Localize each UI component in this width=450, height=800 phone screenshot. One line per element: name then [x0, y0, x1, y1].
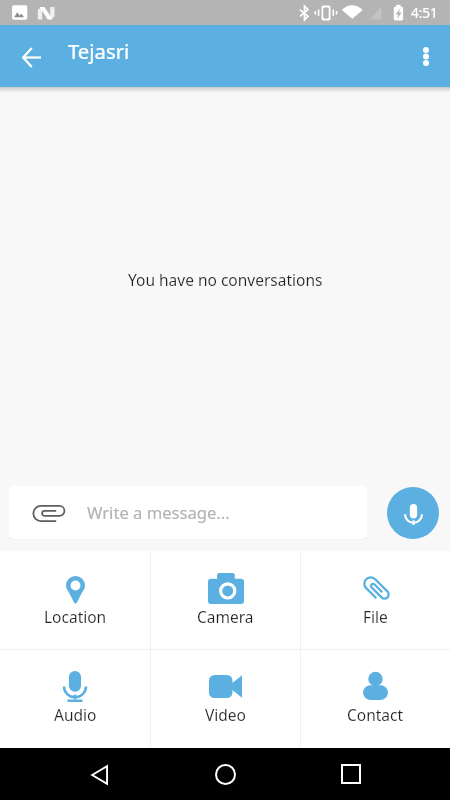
staticText: You have no conversations: [128, 269, 323, 290]
staticText: Write a message...: [87, 501, 230, 524]
staticText: Camera: [197, 606, 254, 627]
button[interactable]: Audio: [0, 649, 150, 747]
staticText: Location: [44, 606, 107, 627]
staticText: Audio: [54, 704, 97, 725]
button[interactable]: File: [301, 551, 450, 649]
button[interactable]: Back: [8, 33, 54, 79]
staticText: File: [363, 606, 388, 627]
staticText: Tejasri: [68, 37, 130, 65]
button[interactable]: Attach: [9, 486, 367, 539]
staticText: Contact: [347, 704, 404, 725]
button[interactable]: Camera: [151, 551, 300, 649]
button[interactable]: Video: [151, 649, 300, 747]
button[interactable]: Contact: [301, 649, 450, 747]
staticText: 4:51: [411, 4, 438, 22]
button[interactable]: Recent apps: [327, 750, 375, 798]
button[interactable]: Location: [0, 551, 150, 649]
staticText: Video: [205, 704, 246, 725]
button[interactable]: Record voice message: [387, 487, 439, 539]
other: Attach: [9, 486, 87, 539]
button[interactable]: Home: [201, 750, 249, 798]
button[interactable]: Back: [75, 751, 123, 799]
button[interactable]: More options: [402, 32, 450, 80]
